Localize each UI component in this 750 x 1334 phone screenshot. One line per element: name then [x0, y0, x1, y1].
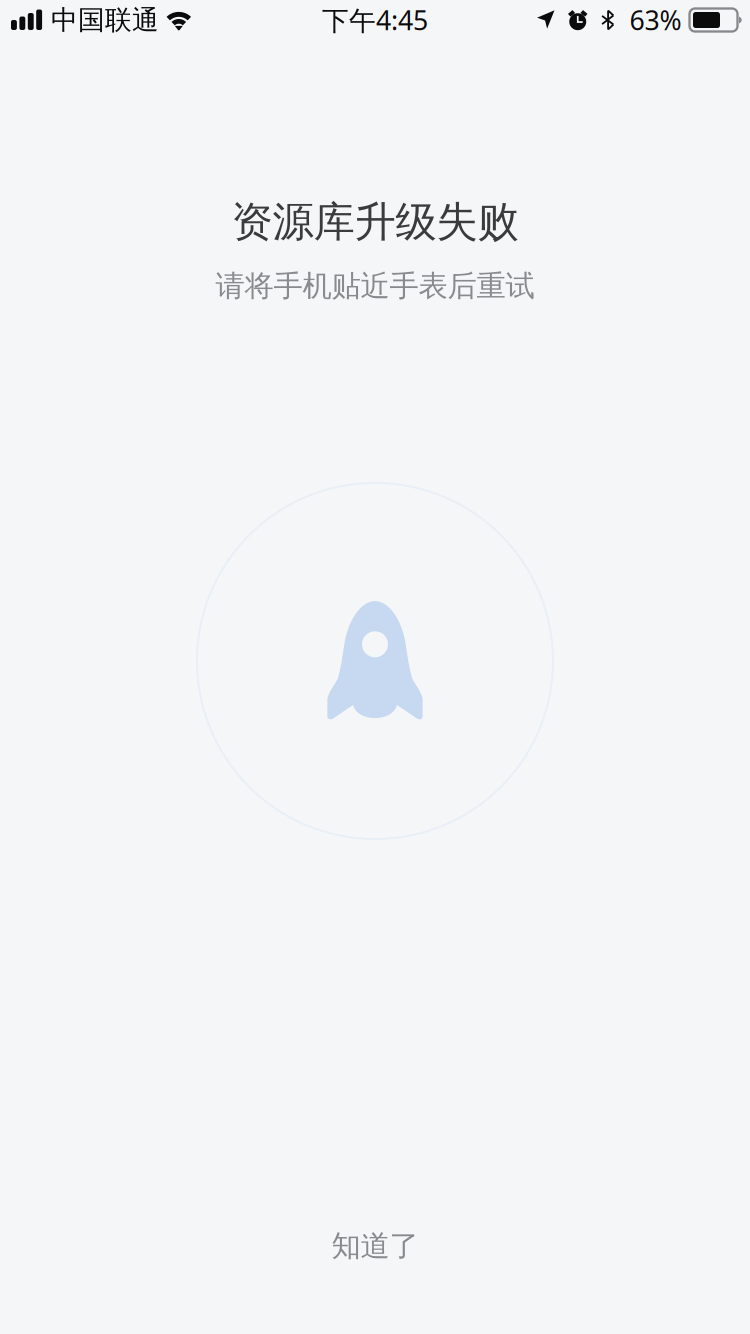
- button[interactable]: 知道了: [0, 1221, 750, 1271]
- staticText: 知道了: [331, 1228, 418, 1264]
- staticText: 资源库升级失败: [231, 197, 518, 247]
- staticText: 下午4:45: [322, 2, 428, 38]
- staticText: 63%: [629, 2, 681, 38]
- staticText: 请将手机贴近手表后重试: [215, 268, 534, 304]
- staticText: 中国联通: [51, 4, 159, 36]
